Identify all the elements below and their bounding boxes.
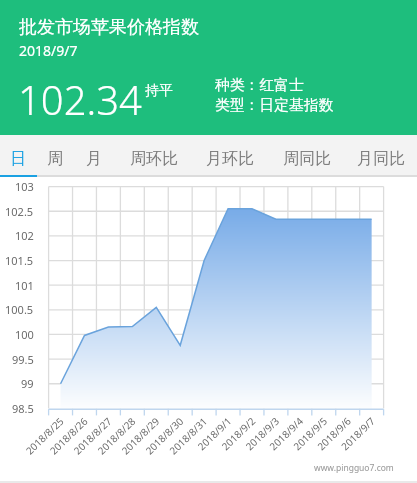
staticText: 月同比: [357, 149, 405, 169]
staticText: 周同比: [283, 149, 331, 169]
button[interactable]: 周环比: [124, 142, 184, 176]
button[interactable]: 周同比: [277, 142, 337, 176]
staticText: 日: [10, 149, 26, 169]
staticText: 批发市场苹果价格指数: [19, 16, 199, 39]
button[interactable]: 月环比: [200, 142, 260, 176]
staticText: 类型：日定基指数: [215, 96, 334, 115]
button[interactable]: 月同比: [351, 142, 411, 176]
button[interactable]: 周: [37, 142, 73, 176]
staticText: 102.34: [18, 72, 142, 126]
button[interactable]: 日: [0, 142, 36, 176]
staticText: www.pingguo7.com: [314, 462, 394, 474]
staticText: 2018/9/7: [19, 41, 78, 60]
staticText: 种类：红富士: [215, 76, 304, 95]
staticText: 持平: [145, 82, 173, 100]
staticText: 周环比: [130, 149, 178, 169]
staticText: 月: [86, 149, 102, 169]
staticText: 月环比: [206, 149, 254, 169]
staticText: 周: [47, 149, 63, 169]
button[interactable]: 月: [76, 142, 112, 176]
